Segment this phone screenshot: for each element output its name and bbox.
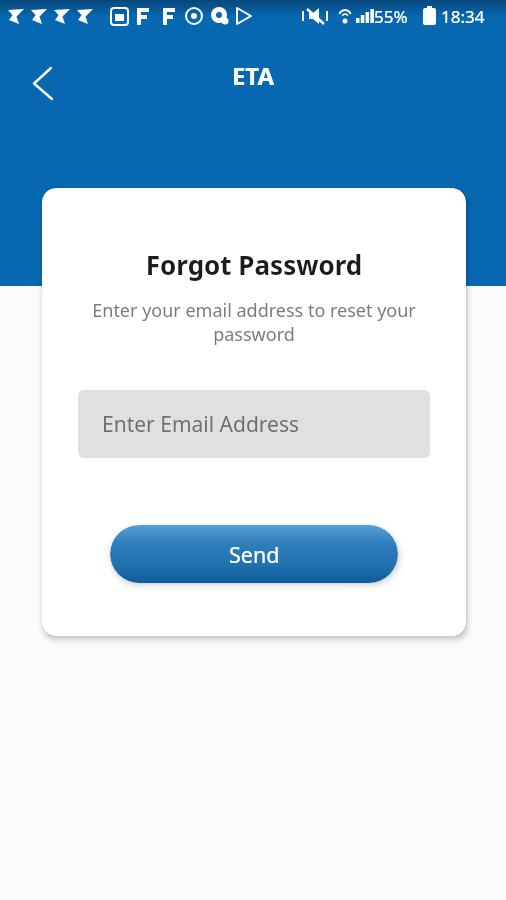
button[interactable]: Send — [110, 525, 398, 583]
staticText: ETA — [0, 59, 506, 92]
staticText: 18:34 — [441, 5, 485, 28]
button[interactable] — [20, 60, 68, 108]
staticText: Enter your email address to reset your p… — [42, 298, 466, 346]
button[interactable]: Enter Email Address — [78, 390, 430, 458]
staticText: Send — [229, 540, 280, 569]
staticText: 55% — [374, 5, 408, 28]
staticText: Enter Email Address — [102, 410, 300, 439]
staticText: Forgot Password — [42, 247, 466, 282]
